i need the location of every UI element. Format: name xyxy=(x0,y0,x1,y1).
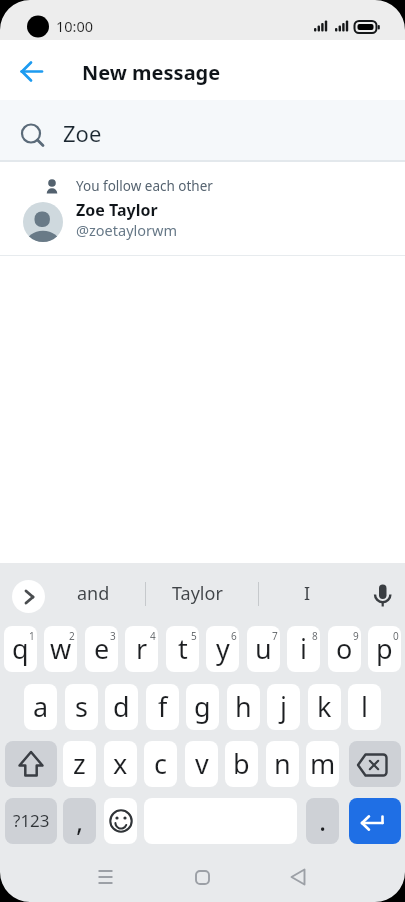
button[interactable]: x xyxy=(104,741,137,787)
button[interactable]: b xyxy=(225,741,258,787)
staticText: 8 xyxy=(312,629,318,643)
button[interactable]: s xyxy=(65,684,98,730)
staticText: Zoe Taylor xyxy=(76,199,158,221)
staticText: 2 xyxy=(69,629,75,643)
button[interactable] xyxy=(0,100,405,161)
button[interactable]: r xyxy=(125,626,158,672)
button[interactable] xyxy=(281,860,315,894)
button[interactable]: w xyxy=(44,626,77,672)
staticText: 1 xyxy=(29,629,35,643)
button[interactable]: v xyxy=(185,741,218,787)
button[interactable]: p xyxy=(368,626,401,672)
button[interactable]: e xyxy=(85,626,118,672)
staticText: l xyxy=(361,688,368,725)
staticText: Taylor xyxy=(172,581,223,606)
button[interactable] xyxy=(349,798,401,844)
staticText: You follow each other xyxy=(76,177,213,195)
staticText: w xyxy=(50,630,72,667)
button[interactable]: q xyxy=(4,626,37,672)
button[interactable]: You follow each other xyxy=(0,168,405,204)
button[interactable]: and xyxy=(58,577,128,610)
button[interactable] xyxy=(5,741,57,787)
button[interactable]: o xyxy=(328,626,361,672)
staticText: t xyxy=(178,630,188,667)
button[interactable]: k xyxy=(308,684,341,730)
staticText: g xyxy=(194,688,211,725)
staticText: r xyxy=(136,630,148,667)
staticText: 10:00 xyxy=(56,16,94,36)
button[interactable] xyxy=(88,860,122,894)
button[interactable]: . xyxy=(306,798,339,844)
staticText: and xyxy=(77,581,110,606)
staticText: I xyxy=(304,581,311,606)
staticText: ?123 xyxy=(13,809,50,832)
button[interactable]: l xyxy=(348,684,381,730)
button[interactable]: c xyxy=(144,741,177,787)
button[interactable]: d xyxy=(105,684,138,730)
staticText: New message xyxy=(82,59,221,86)
button[interactable]: j xyxy=(267,684,300,730)
staticText: v xyxy=(195,745,209,782)
button[interactable]: u xyxy=(247,626,280,672)
button[interactable]: ?123 xyxy=(5,798,57,844)
staticText: , xyxy=(76,802,84,839)
button[interactable] xyxy=(12,580,45,613)
button[interactable]: Zoe Taylor xyxy=(0,198,405,255)
button[interactable] xyxy=(370,580,396,610)
staticText: p xyxy=(376,630,393,667)
button[interactable]: y xyxy=(206,626,239,672)
button[interactable]: n xyxy=(266,741,299,787)
staticText: k xyxy=(317,688,332,725)
staticText: @zoetaylorwm xyxy=(76,220,178,240)
button[interactable]: , xyxy=(63,798,96,844)
button[interactable]: a xyxy=(24,684,57,730)
staticText: . xyxy=(319,802,327,839)
staticText: 7 xyxy=(272,629,278,643)
button[interactable] xyxy=(104,798,137,844)
button[interactable] xyxy=(9,49,55,93)
staticText: o xyxy=(336,630,353,667)
staticText: 0 xyxy=(393,629,399,643)
staticText: f xyxy=(158,688,168,725)
staticText: n xyxy=(274,745,291,782)
staticText: s xyxy=(75,688,88,725)
button[interactable]: Taylor xyxy=(157,577,237,610)
staticText: d xyxy=(113,688,130,725)
staticText: Zoe xyxy=(63,118,102,148)
staticText: 3 xyxy=(110,629,116,643)
staticText: c xyxy=(154,745,167,782)
staticText: y xyxy=(216,630,230,667)
staticText: x xyxy=(113,745,128,782)
staticText: b xyxy=(233,745,250,782)
button[interactable]: m xyxy=(306,741,339,787)
staticText: 5 xyxy=(191,629,197,643)
staticText: e xyxy=(94,630,110,667)
button[interactable]: t xyxy=(166,626,199,672)
button[interactable]: i xyxy=(287,626,320,672)
staticText: j xyxy=(280,688,287,725)
staticText: 4 xyxy=(150,629,156,643)
button[interactable]: I xyxy=(280,577,334,610)
staticText: 6 xyxy=(231,629,237,643)
staticText: m xyxy=(310,745,336,782)
staticText: u xyxy=(255,630,272,667)
button[interactable] xyxy=(349,741,401,787)
button[interactable]: f xyxy=(146,684,179,730)
staticText: a xyxy=(33,688,49,725)
button[interactable]: g xyxy=(186,684,219,730)
button[interactable]: h xyxy=(227,684,260,730)
button[interactable]: z xyxy=(63,741,96,787)
staticText: h xyxy=(235,688,252,725)
button[interactable] xyxy=(185,860,219,894)
staticText: 9 xyxy=(353,629,359,643)
staticText: z xyxy=(73,745,86,782)
staticText: i xyxy=(300,630,307,667)
staticText: q xyxy=(12,630,29,667)
